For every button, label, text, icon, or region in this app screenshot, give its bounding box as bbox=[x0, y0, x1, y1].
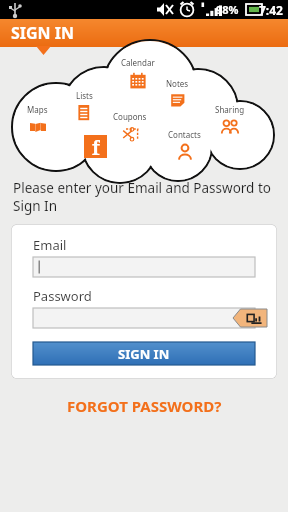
staticText: Please enter your Email and Password to … bbox=[13, 179, 275, 215]
staticText: Password bbox=[33, 287, 92, 305]
button[interactable]: SIGN IN bbox=[0, 19, 288, 47]
button[interactable]: Password field bbox=[33, 308, 255, 328]
button[interactable]: Email field bbox=[33, 257, 255, 277]
button[interactable]: Facebook bbox=[84, 135, 107, 158]
button[interactable]: SIGN IN bbox=[33, 342, 255, 365]
staticText: Notes bbox=[166, 78, 189, 89]
staticText: Maps bbox=[27, 104, 48, 115]
staticText: Email bbox=[33, 236, 67, 254]
button[interactable]: Coupons bbox=[113, 111, 147, 144]
staticText: f bbox=[92, 135, 100, 158]
staticText: Contacts bbox=[168, 129, 201, 140]
button[interactable]: Contacts bbox=[168, 129, 201, 162]
staticText: Sharing bbox=[215, 104, 245, 115]
staticText: FORGOT PASSWORD? bbox=[67, 396, 222, 416]
button[interactable]: Calendar bbox=[121, 57, 155, 90]
button[interactable]: FORGOT PASSWORD? bbox=[57, 392, 232, 420]
staticText: Lists bbox=[76, 90, 93, 101]
button[interactable]: Notes bbox=[166, 78, 189, 111]
staticText: Calendar bbox=[121, 57, 155, 68]
staticText: 98% bbox=[216, 2, 239, 17]
staticText: Coupons bbox=[113, 111, 147, 122]
staticText: 7:42 bbox=[259, 2, 283, 18]
staticText: SIGN IN bbox=[11, 22, 75, 44]
button[interactable]: Sharing bbox=[215, 104, 245, 137]
button[interactable]: Lists bbox=[74, 90, 94, 123]
staticText: SIGN IN bbox=[118, 345, 170, 363]
button[interactable]: Maps bbox=[27, 104, 48, 137]
